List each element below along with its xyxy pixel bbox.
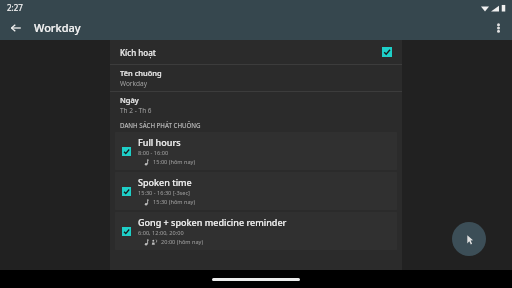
button[interactable]: More options	[488, 18, 508, 38]
staticText: Th 2 - Th 6	[120, 106, 152, 115]
staticText: DANH SÁCH PHÁT CHUÔNG	[120, 121, 201, 129]
staticText: Full hours	[138, 136, 181, 148]
staticText: 20:00 (hôm nay)	[161, 238, 204, 246]
staticText: Workday	[120, 79, 147, 88]
staticText: Spoken time	[138, 176, 192, 188]
button[interactable]: Tên chuông	[110, 65, 402, 91]
staticText: 8:00 - 16:00	[138, 149, 169, 157]
staticText: Ngày	[120, 95, 139, 105]
staticText: Gong + spoken medicine reminder	[138, 216, 287, 228]
button[interactable]: Enabled	[115, 172, 397, 210]
staticText: 15:30 (hôm nay)	[153, 198, 196, 206]
button[interactable]: Enabled	[115, 212, 397, 250]
button[interactable]: Kích hoạt	[110, 40, 402, 64]
button[interactable]: Enabled	[122, 147, 131, 156]
staticText: Workday	[34, 20, 81, 35]
staticText: Tên chuông	[120, 68, 162, 78]
staticText: 2:27	[7, 2, 23, 13]
button[interactable]: Ngày	[110, 92, 402, 118]
button[interactable]: Enabled	[122, 227, 131, 236]
staticText: 15:30 - 16:30 [-3sec]	[138, 189, 190, 197]
button[interactable]: Enabled	[115, 132, 397, 170]
button[interactable]: Add alarm	[452, 222, 486, 256]
button[interactable]: Back	[6, 18, 26, 38]
staticText: 6:00, 12:00, 20:00	[138, 229, 184, 237]
button[interactable]: Enabled	[122, 187, 131, 196]
staticText: Kích hoạt	[120, 47, 382, 58]
button[interactable]: Enabled	[382, 47, 392, 57]
staticText: 15:00 (hôm nay)	[153, 158, 196, 166]
